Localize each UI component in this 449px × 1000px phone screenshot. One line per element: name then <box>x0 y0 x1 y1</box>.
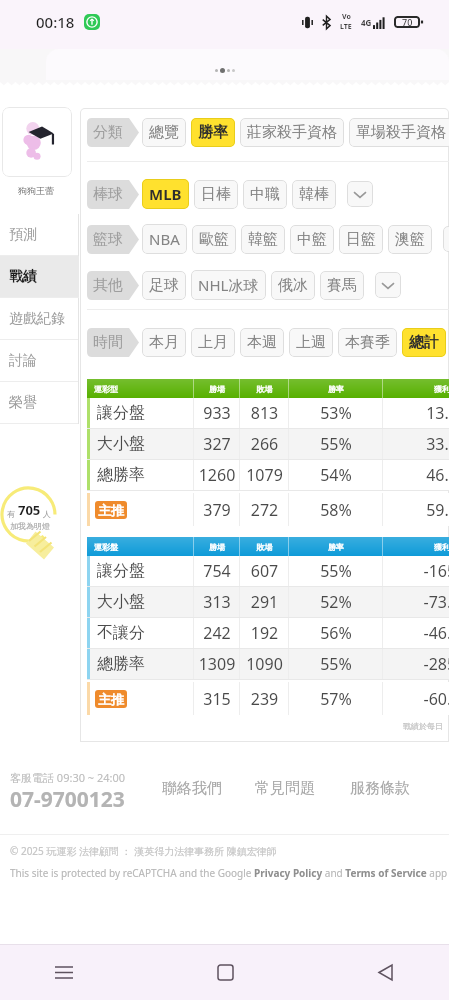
button[interactable]: 日籃 <box>339 225 383 254</box>
staticText: This site is protected by reCAPTCHA and … <box>10 866 448 880</box>
button[interactable]: 單場殺手資格 <box>349 118 449 147</box>
button[interactable]: 榮譽 <box>0 382 79 424</box>
button[interactable]: Back <box>361 948 409 996</box>
staticText: © 2025 玩運彩 法律顧問 ： 漢英得力法律事務所 陳鎮宏律師 <box>10 844 277 858</box>
button[interactable]: MLB <box>142 179 189 209</box>
button[interactable]: 主推 <box>95 690 127 708</box>
staticText: 1079 <box>244 464 285 486</box>
button[interactable]: NBA <box>142 224 187 254</box>
staticText: 讓分盤 <box>97 403 188 423</box>
button[interactable]: NHL冰球 <box>191 270 266 300</box>
button[interactable]: 中職 <box>243 180 287 209</box>
button[interactable]: 中籃 <box>290 225 334 254</box>
staticText: 中職 <box>250 185 280 204</box>
button[interactable]: 上月 <box>191 328 235 357</box>
staticText: 46.1 <box>387 464 449 486</box>
staticText: 07-9700123 <box>10 785 125 814</box>
staticText: 大小盤 <box>97 434 188 454</box>
staticText: 棒球 <box>93 185 123 204</box>
button[interactable]: Expand <box>443 226 449 252</box>
button[interactable]: 上週 <box>289 328 333 357</box>
staticText: 53% <box>293 402 379 424</box>
button[interactable]: 俄冰 <box>271 271 315 300</box>
button[interactable]: 聯絡我們 <box>162 779 222 798</box>
button[interactable]: 本賽季 <box>338 328 397 357</box>
staticText: 55% <box>293 653 379 675</box>
staticText: 總勝率 <box>97 465 188 485</box>
staticText: 俄冰 <box>278 276 308 295</box>
staticText: NBA <box>149 229 180 249</box>
staticText: 705 <box>18 501 41 519</box>
staticText: 55% <box>293 560 379 582</box>
button[interactable]: 總計 <box>402 328 446 357</box>
staticText: 33.2 <box>387 433 449 455</box>
button[interactable]: 足球 <box>142 271 186 300</box>
staticText: 獲利 <box>383 542 449 552</box>
button[interactable]: Recents <box>40 948 88 996</box>
staticText: 勝率 <box>289 542 383 552</box>
staticText: 獲利 <box>383 384 449 394</box>
staticText: 4G <box>361 17 372 28</box>
button[interactable]: 討論 <box>0 340 79 382</box>
staticText: 中籃 <box>297 230 327 249</box>
staticText: -46.3 <box>387 622 449 644</box>
button[interactable]: 主推 <box>95 501 127 519</box>
button[interactable]: 遊戲紀錄 <box>0 298 79 340</box>
staticText: 58% <box>293 499 379 521</box>
button[interactable]: Expand <box>375 272 401 298</box>
staticText: 預測 <box>9 226 37 244</box>
staticText: 總計 <box>409 333 439 352</box>
button[interactable]: 日棒 <box>194 180 238 209</box>
staticText: 54% <box>293 464 379 486</box>
staticText: 戰績 <box>9 268 37 286</box>
staticText: 時間 <box>93 333 123 352</box>
button[interactable]: 莊家殺手資格 <box>240 118 344 147</box>
button[interactable]: 賽馬 <box>320 271 364 300</box>
staticText: 57% <box>293 688 379 710</box>
staticText: 本週 <box>247 333 277 352</box>
button[interactable]: Expand <box>347 181 373 207</box>
button[interactable]: 服務條款 <box>350 779 410 798</box>
staticText: 55% <box>293 433 379 455</box>
button[interactable]: 歐籃 <box>192 225 236 254</box>
staticText: 分類 <box>93 123 123 142</box>
staticText: 敗場 <box>240 384 289 394</box>
staticText: 59.9 <box>387 499 449 521</box>
staticText: 歐籃 <box>199 230 229 249</box>
staticText: 討論 <box>9 352 37 370</box>
button[interactable]: 本月 <box>142 328 186 357</box>
staticText: 242 <box>198 622 236 644</box>
staticText: 70 <box>402 16 413 28</box>
button[interactable]: 勝率 <box>191 118 235 147</box>
staticText: 327 <box>198 433 236 455</box>
staticText: 人 <box>41 508 52 519</box>
staticText: 籃球 <box>93 230 123 249</box>
staticText: 大小盤 <box>97 592 188 612</box>
staticText: 56% <box>293 622 379 644</box>
button[interactable]: 總覽 <box>142 118 186 147</box>
staticText: 272 <box>244 499 285 521</box>
staticText: Vo <box>342 12 351 22</box>
staticText: 賽馬 <box>327 276 357 295</box>
staticText: 戰績於每日 <box>87 721 443 731</box>
staticText: 1309 <box>198 653 236 675</box>
staticText: 315 <box>198 688 236 710</box>
button[interactable]: 本週 <box>240 328 284 357</box>
button[interactable]: 澳籃 <box>388 225 432 254</box>
button[interactable]: 常見問題 <box>255 779 315 798</box>
staticText: 單場殺手資格 <box>356 123 446 142</box>
staticText: 加我為明燈 <box>10 521 50 531</box>
staticText: 52% <box>293 591 379 613</box>
button[interactable]: 韓棒 <box>292 180 336 209</box>
staticText: 客服電話 09:30 ~ 24:00 <box>10 770 126 785</box>
staticText: 266 <box>244 433 285 455</box>
staticText: 榮譽 <box>9 394 37 412</box>
button[interactable]: 戰績 <box>0 256 79 298</box>
staticText: 運彩盤 <box>94 542 194 552</box>
button[interactable]: 韓籃 <box>241 225 285 254</box>
staticText: 239 <box>244 688 285 710</box>
staticText: 上週 <box>296 333 326 352</box>
button[interactable]: 預測 <box>0 214 79 256</box>
staticText: 933 <box>198 402 236 424</box>
button[interactable]: Home <box>201 948 249 996</box>
